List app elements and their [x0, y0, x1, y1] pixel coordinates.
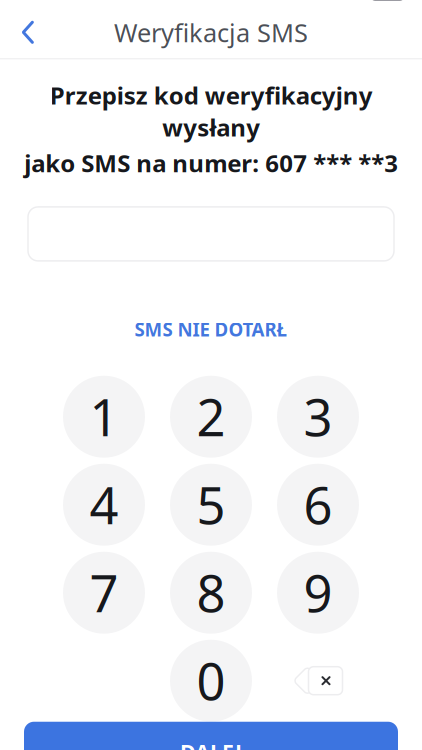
staticText: 4	[89, 471, 118, 538]
staticText: DALEJ	[180, 737, 242, 750]
button[interactable]: 8	[170, 552, 252, 634]
button[interactable]: 1	[63, 376, 145, 458]
staticText: 1	[89, 383, 118, 450]
staticText: 6	[303, 471, 332, 538]
staticText: 2	[196, 383, 225, 450]
button[interactable]: 0	[170, 640, 252, 722]
staticText: 9	[303, 559, 332, 626]
button[interactable]: Usuń	[277, 640, 359, 722]
staticText: SMS NIE DOTARŁ	[134, 317, 287, 342]
staticText: 0	[196, 647, 225, 714]
button[interactable]: SMS NIE DOTARŁ	[116, 307, 305, 352]
staticText: 5	[196, 471, 225, 538]
staticText: 7	[89, 559, 118, 626]
staticText: Przepisz kod weryfikacyjny wysłany	[49, 79, 372, 143]
staticText: 8	[196, 559, 225, 626]
button[interactable]: 9	[277, 552, 359, 634]
staticText: 3	[303, 383, 332, 450]
button[interactable]: 4	[63, 464, 145, 546]
button[interactable]: 5	[170, 464, 252, 546]
button[interactable]: 7	[63, 552, 145, 634]
staticText: Weryfikacja SMS	[114, 15, 308, 49]
button[interactable]: 6	[277, 464, 359, 546]
button[interactable]: 2	[170, 376, 252, 458]
staticText: jako SMS na numer: 607 *** **3	[24, 147, 398, 179]
button[interactable]: Wstecz	[4, 8, 52, 56]
button[interactable]: 3	[277, 376, 359, 458]
button[interactable]: DALEJ	[24, 722, 398, 750]
